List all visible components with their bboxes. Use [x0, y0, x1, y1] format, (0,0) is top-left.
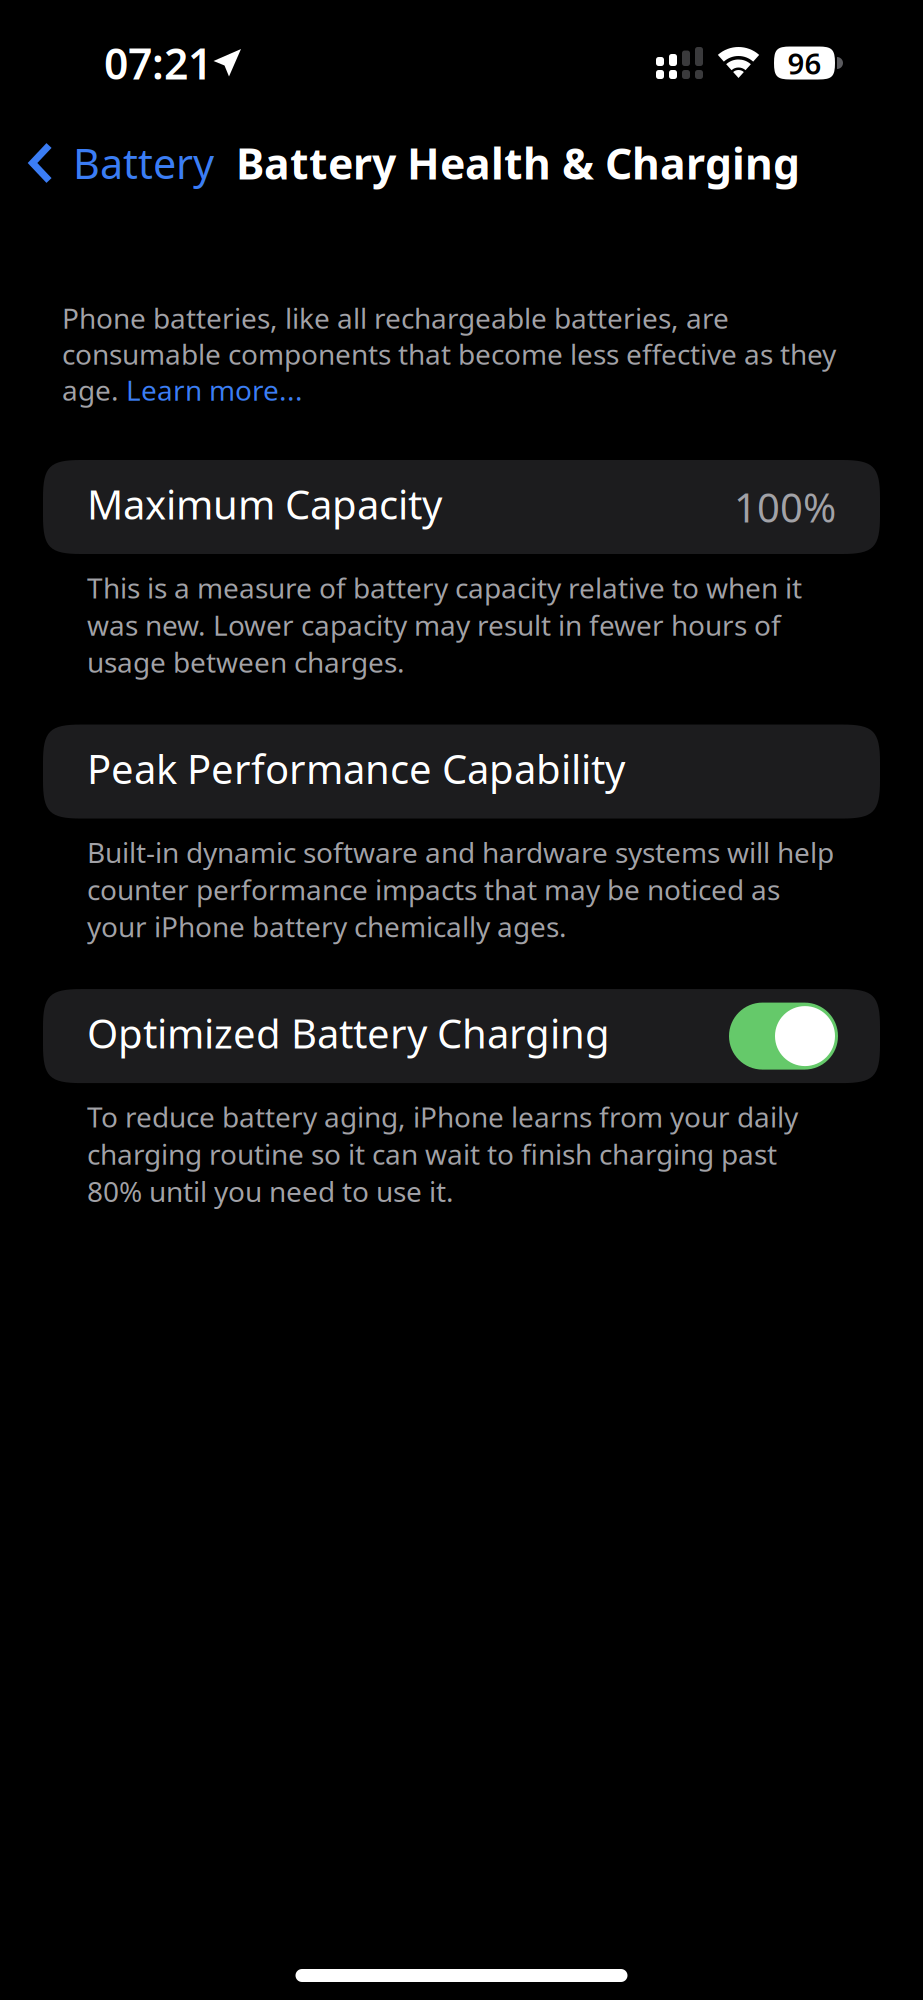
staticText: Phone batteries, like all rechargeable b…	[62, 299, 729, 337]
staticText: Optimized Battery Charging	[87, 1006, 610, 1060]
staticText: To reduce battery aging, iPhone learns f…	[87, 1098, 798, 1210]
button[interactable]: Learn more...	[126, 371, 303, 409]
staticText: 07:21	[104, 35, 212, 91]
staticText: consumable components that become less e…	[62, 335, 836, 373]
button[interactable]: Optimized Battery Charging, on	[729, 1003, 838, 1070]
staticText: Maximum Capacity	[87, 477, 442, 530]
staticText: Battery	[73, 136, 214, 190]
button[interactable]: Maximum Capacity	[43, 460, 880, 554]
staticText: Battery Health & Charging	[236, 135, 800, 191]
staticText: Learn more...	[126, 371, 303, 409]
button[interactable]: Battery	[0, 120, 226, 206]
staticText: This is a measure of battery capacity re…	[87, 569, 802, 680]
staticText: 100%	[734, 480, 836, 533]
staticText: age.	[62, 371, 126, 409]
staticText: Built-in dynamic software and hardware s…	[87, 833, 834, 945]
button[interactable]: Peak Performance Capability	[43, 724, 880, 818]
staticText: Peak Performance Capability	[87, 742, 625, 795]
button[interactable]: Optimized Battery Charging	[43, 989, 880, 1083]
staticText: 96	[787, 43, 821, 82]
